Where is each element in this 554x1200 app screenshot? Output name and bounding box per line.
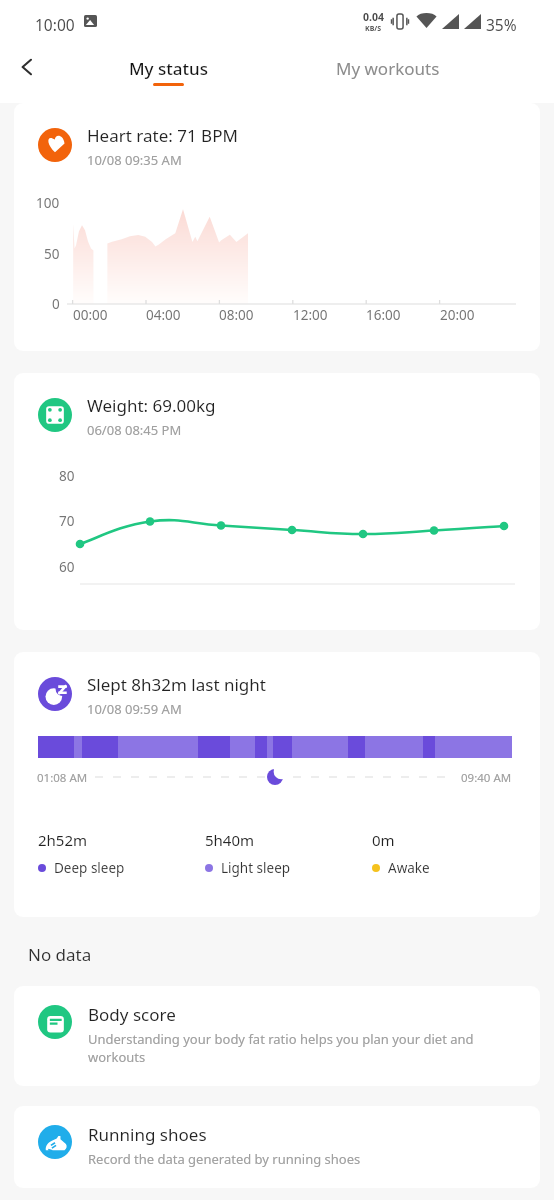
button[interactable]: Back bbox=[7, 47, 47, 87]
staticText: 08:00 bbox=[219, 306, 254, 324]
button[interactable]: Slept 8h32m last night bbox=[14, 652, 540, 917]
staticText: 10/08 09:35 AM bbox=[87, 151, 182, 169]
staticText: Deep sleep bbox=[54, 859, 125, 877]
staticText: 20:00 bbox=[440, 306, 475, 324]
staticText: Awake bbox=[388, 859, 430, 877]
staticText: Running shoes bbox=[88, 1123, 207, 1146]
staticText: 04:00 bbox=[146, 306, 181, 324]
staticText: My workouts bbox=[336, 57, 440, 80]
staticText: 70 bbox=[59, 512, 75, 530]
staticText: 00:00 bbox=[73, 306, 108, 324]
staticText: 12:00 bbox=[293, 306, 328, 324]
staticText: 80 bbox=[59, 467, 75, 485]
staticText: Weight: 69.00kg bbox=[87, 394, 216, 417]
staticText: 2h52m bbox=[38, 830, 88, 850]
staticText: 100 bbox=[36, 194, 60, 212]
button[interactable]: My workouts bbox=[278, 44, 498, 103]
staticText: Understanding your body fat ratio helps … bbox=[88, 1030, 474, 1066]
staticText: 09:40 AM bbox=[461, 770, 512, 786]
staticText: 0.04 bbox=[363, 10, 384, 24]
button[interactable]: Heart rate: 71 BPM bbox=[14, 103, 540, 351]
staticText: 0 bbox=[52, 295, 60, 313]
staticText: Slept 8h32m last night bbox=[87, 673, 266, 696]
staticText: 10:00 bbox=[35, 14, 75, 35]
button[interactable]: My status bbox=[58, 44, 278, 103]
staticText: Record the data generated by running sho… bbox=[88, 1150, 361, 1168]
staticText: 16:00 bbox=[366, 306, 401, 324]
staticText: Light sleep bbox=[221, 859, 291, 877]
staticText: 35% bbox=[486, 14, 517, 35]
staticText: 06/08 08:45 PM bbox=[87, 421, 182, 439]
staticText: Heart rate: 71 BPM bbox=[87, 124, 238, 147]
button[interactable]: Running shoes bbox=[14, 1106, 540, 1188]
staticText: My status bbox=[129, 57, 208, 80]
button[interactable]: Body score bbox=[14, 986, 540, 1086]
staticText: 60 bbox=[59, 558, 75, 576]
staticText: Body score bbox=[88, 1003, 176, 1026]
staticText: 50 bbox=[44, 245, 60, 263]
staticText: 10/08 09:59 AM bbox=[87, 700, 182, 718]
button[interactable]: Weight: 69.00kg bbox=[14, 373, 540, 630]
staticText: 0m bbox=[372, 830, 395, 850]
staticText: No data bbox=[28, 943, 92, 966]
staticText: 01:08 AM bbox=[37, 770, 88, 786]
staticText: KB/S bbox=[365, 24, 382, 34]
staticText: 5h40m bbox=[205, 830, 255, 850]
